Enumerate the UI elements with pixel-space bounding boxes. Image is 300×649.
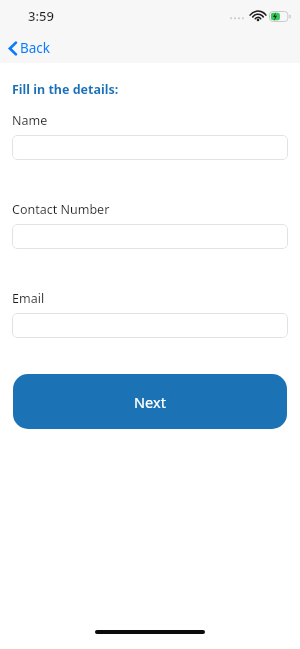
staticText: Fill in the details: — [12, 81, 119, 98]
button[interactable]: Back — [8, 39, 51, 57]
button[interactable] — [12, 135, 288, 160]
staticText: Name — [12, 112, 48, 129]
staticText: Back — [20, 39, 51, 57]
staticText: Contact Number — [12, 201, 110, 218]
staticText: Email — [12, 290, 45, 307]
staticText: Next — [134, 392, 166, 412]
button[interactable]: Next — [13, 374, 287, 429]
button[interactable] — [12, 224, 288, 249]
button[interactable] — [12, 313, 288, 338]
staticText: 3:59 — [28, 7, 54, 25]
